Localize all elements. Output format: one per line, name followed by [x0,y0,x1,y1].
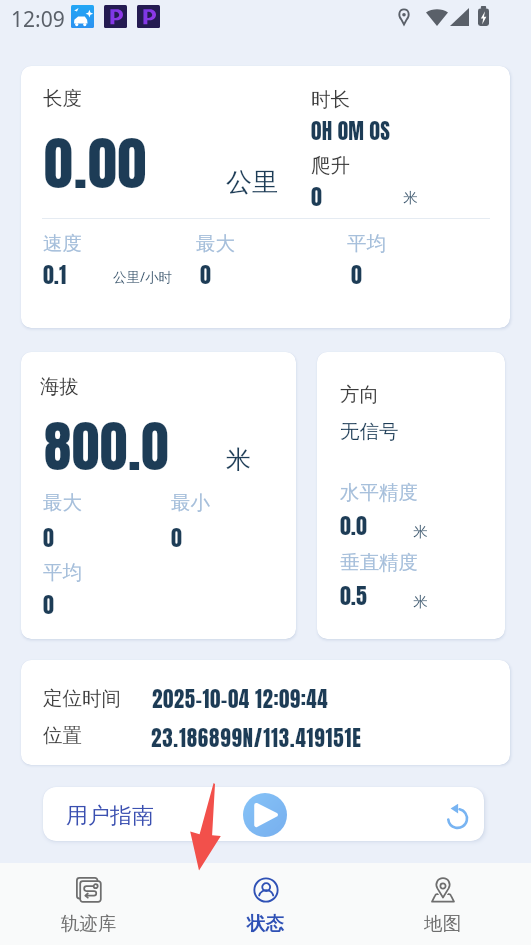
staticText: 水平精度 [340,480,418,505]
staticText: 米 [413,523,428,541]
staticText: 0H 0M 0S [311,115,391,147]
staticText: 0 [200,258,211,291]
staticText: 爬升 [311,153,350,178]
staticText: 米 [226,444,251,475]
staticText: 米 [403,189,418,207]
staticText: 位置 [43,723,82,748]
staticText: 0 [351,258,362,291]
staticText: 地图 [424,912,461,935]
staticText: 速度 [43,231,82,256]
staticText: 垂直精度 [340,550,418,575]
staticText: 无信号 [340,419,399,444]
staticText: 轨迹库 [61,912,117,935]
staticText: 23.186899N/113.419151E [151,722,362,754]
button[interactable]: 状态 [177,863,354,945]
staticText: 2025-10-04 12:09:44 [152,683,329,715]
staticText: 平均 [43,560,82,585]
button[interactable]: 轨迹库 [0,863,177,945]
button[interactable]: 地图 [354,863,531,945]
staticText: 0.00 [44,120,148,207]
staticText: 平均 [347,231,386,256]
staticText: 最大 [43,490,82,515]
staticText: 公里/小时 [113,268,173,286]
staticText: 最大 [196,231,235,256]
staticText: 长度 [43,86,82,111]
staticText: 0 [43,521,54,554]
staticText: 状态 [247,912,284,935]
staticText: 公里 [226,166,278,199]
staticText: 0 [311,180,322,213]
staticText: 800.0 [44,405,170,488]
staticText: 0.1 [43,258,67,291]
staticText: 米 [413,593,428,611]
staticText: 12:09 [11,5,65,34]
button[interactable]: Reset [435,795,471,831]
staticText: 0.0 [340,509,367,542]
button[interactable]: 用户指南 [66,802,154,830]
staticText: 0 [43,588,54,621]
staticText: 海拔 [40,374,79,399]
staticText: 时长 [311,87,350,112]
staticText: 方向 [340,382,379,407]
staticText: 0 [171,521,182,554]
staticText: 定位时间 [43,686,121,711]
staticText: 0.5 [340,579,367,612]
staticText: 最小 [171,490,210,515]
button[interactable]: Start recording [243,793,287,837]
